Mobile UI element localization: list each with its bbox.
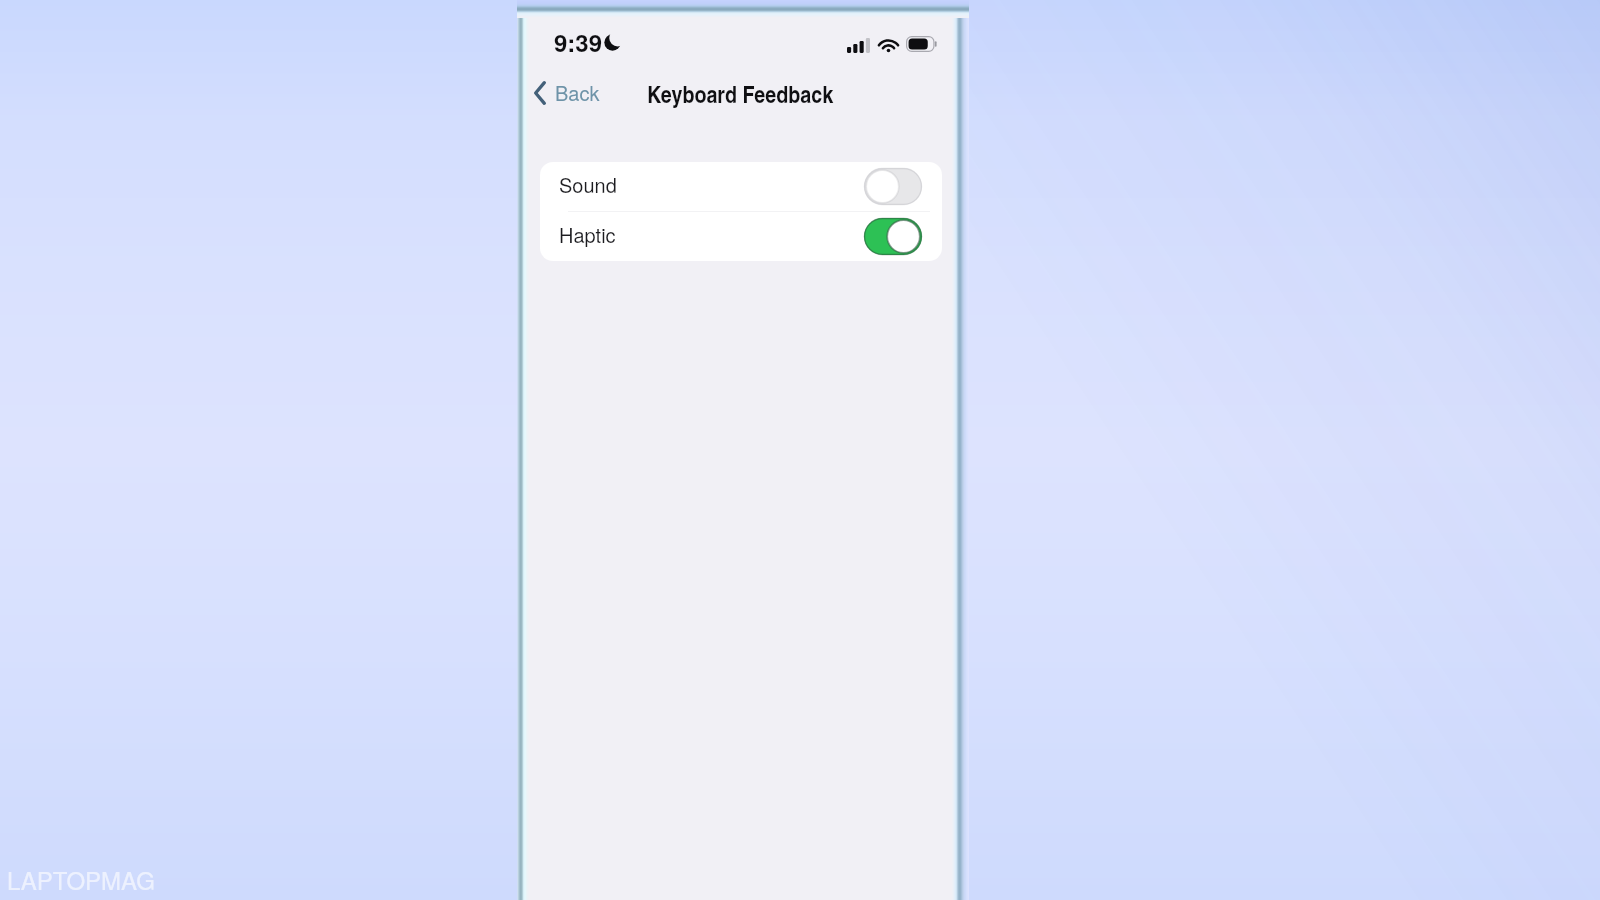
button[interactable]: Switch on bbox=[864, 218, 922, 255]
button[interactable]: Sound bbox=[540, 162, 942, 211]
staticText: 9:39 bbox=[554, 25, 603, 59]
staticText: Haptic bbox=[559, 220, 616, 249]
staticText: LAPTOPMAG bbox=[7, 862, 155, 896]
staticText: Keyboard Feedback bbox=[647, 76, 834, 110]
button[interactable]: Haptic bbox=[540, 212, 942, 261]
button[interactable]: Switch off bbox=[864, 168, 922, 205]
button[interactable]: Back bbox=[526, 72, 608, 113]
staticText: Back bbox=[555, 78, 600, 107]
staticText: Sound bbox=[559, 170, 617, 199]
